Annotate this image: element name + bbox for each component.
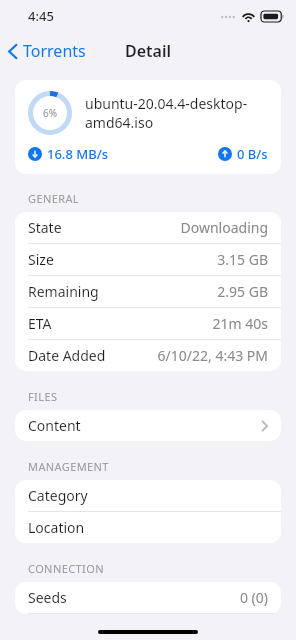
button[interactable]: Content — [15, 410, 281, 441]
staticText: 16.8 MB/s — [47, 145, 108, 163]
staticText: Location — [28, 518, 85, 537]
other: Open content list — [261, 420, 268, 432]
staticText: State — [28, 218, 62, 237]
staticText: 3.15 GB — [217, 250, 268, 269]
staticText: MANAGEMENT — [28, 459, 109, 474]
staticText: 0 B/s — [237, 145, 268, 163]
staticText: GENERAL — [28, 191, 80, 206]
button[interactable]: Date Added — [15, 340, 281, 371]
button[interactable]: Location — [15, 512, 281, 543]
button[interactable]: Torrents — [0, 36, 94, 66]
button[interactable]: Category — [15, 480, 281, 512]
button[interactable]: State — [15, 212, 281, 244]
staticText: 2.95 GB — [217, 282, 268, 301]
staticText: Seeds — [28, 588, 67, 607]
staticText: CONNECTION — [28, 561, 104, 576]
staticText: ETA — [28, 314, 52, 333]
staticText: Size — [28, 250, 54, 269]
staticText: 0 (0) — [239, 588, 268, 607]
staticText: Date Added — [28, 346, 106, 365]
button[interactable]: Seeds — [15, 582, 281, 614]
staticText: 21m 40s — [212, 314, 268, 333]
staticText: ubuntu-20.04.4-desktop-amd64.iso — [85, 94, 268, 132]
staticText: Remaining — [28, 282, 99, 301]
button[interactable]: ETA — [15, 308, 281, 340]
staticText: Torrents — [23, 40, 86, 62]
staticText: Category — [28, 486, 88, 505]
staticText: Detail — [125, 40, 171, 62]
staticText: 4:45 — [28, 7, 54, 25]
staticText: 6/10/22, 4:43 PM — [157, 346, 268, 365]
staticText: FILES — [28, 389, 58, 404]
staticText: Downloading — [180, 218, 268, 237]
button[interactable]: Size — [15, 244, 281, 276]
button[interactable]: Remaining — [15, 276, 281, 308]
button[interactable]: 6% — [15, 80, 281, 174]
staticText: 6% — [43, 106, 58, 120]
staticText: Content — [28, 416, 81, 435]
